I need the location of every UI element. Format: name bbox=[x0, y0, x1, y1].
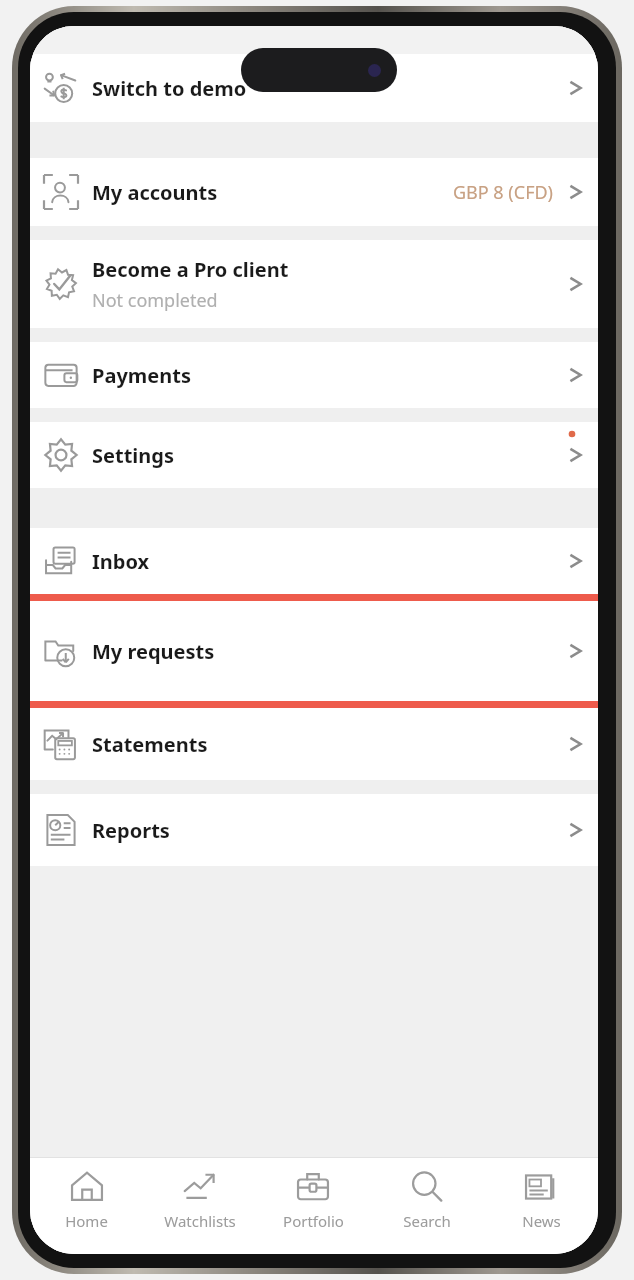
button[interactable]: Become a Pro client bbox=[30, 240, 598, 328]
staticText: Statements bbox=[92, 731, 208, 758]
staticText: Switch to demo bbox=[92, 75, 247, 102]
button[interactable]: My requests bbox=[30, 601, 598, 701]
button[interactable]: Watchlists bbox=[143, 1158, 256, 1254]
staticText: Watchlists bbox=[164, 1211, 236, 1231]
staticText: Portfolio bbox=[283, 1211, 344, 1231]
staticText: GBP 8 (CFD) bbox=[453, 180, 554, 205]
button[interactable]: Reports bbox=[30, 794, 598, 866]
staticText: News bbox=[522, 1211, 561, 1231]
button[interactable]: Inbox bbox=[30, 528, 598, 594]
staticText: My accounts bbox=[92, 179, 218, 206]
staticText: Inbox bbox=[92, 548, 150, 575]
button[interactable]: Search bbox=[370, 1158, 484, 1254]
staticText: Payments bbox=[92, 362, 191, 389]
staticText: Not completed bbox=[92, 288, 218, 313]
staticText: My requests bbox=[92, 638, 215, 665]
button[interactable]: Switch to demo bbox=[30, 54, 598, 122]
button[interactable]: Statements bbox=[30, 708, 598, 780]
button[interactable]: Portfolio bbox=[256, 1158, 370, 1254]
staticText: Search bbox=[403, 1211, 451, 1231]
staticText: Home bbox=[65, 1211, 108, 1231]
button[interactable]: My accounts bbox=[30, 158, 598, 226]
button[interactable]: Payments bbox=[30, 342, 598, 408]
staticText: Settings bbox=[92, 442, 174, 469]
button[interactable]: Home bbox=[30, 1158, 143, 1254]
staticText: Reports bbox=[92, 817, 170, 844]
button[interactable]: Settings bbox=[30, 422, 598, 488]
staticText: Become a Pro client bbox=[92, 256, 289, 283]
button[interactable]: News bbox=[484, 1158, 598, 1254]
